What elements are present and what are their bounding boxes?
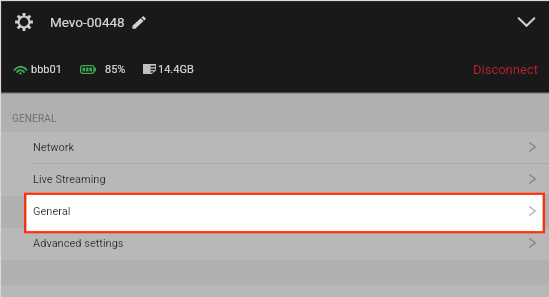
staticText: GENERAL — [12, 113, 57, 125]
button[interactable]: Disconnect — [472, 60, 539, 79]
button[interactable]: Live Streaming — [0, 164, 549, 196]
button[interactable]: Collapse — [511, 7, 541, 37]
staticText: Mevo-00448 — [50, 14, 125, 30]
button[interactable]: General — [0, 195, 549, 227]
button[interactable]: Network — [0, 132, 549, 164]
staticText: Disconnect — [473, 62, 538, 77]
staticText: General — [33, 205, 71, 218]
staticText: bbb01 — [31, 63, 62, 76]
staticText: Live Streaming — [33, 173, 106, 186]
staticText: Network — [33, 141, 75, 154]
staticText: 14.4GB — [158, 63, 194, 76]
button[interactable]: Rename device — [125, 9, 151, 35]
staticText: 85% — [105, 63, 126, 76]
button[interactable]: Settings — [9, 7, 39, 37]
button[interactable]: Advanced settings — [0, 228, 549, 260]
staticText: Advanced settings — [33, 237, 124, 250]
